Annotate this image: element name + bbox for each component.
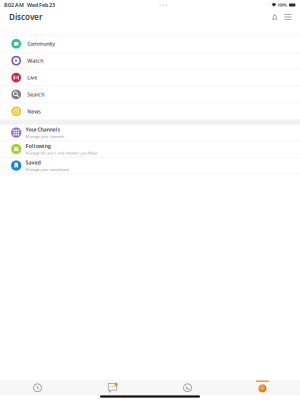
button[interactable]: Menu <box>281 11 295 23</box>
button[interactable]: Live <box>0 69 300 86</box>
staticText: Discover <box>9 12 42 22</box>
staticText: Search <box>27 91 44 98</box>
staticText: Following <box>25 142 50 150</box>
button[interactable]: Watch <box>0 52 300 69</box>
button[interactable]: Recent <box>0 380 75 395</box>
button[interactable]: News <box>0 103 300 120</box>
button[interactable]: Profile <box>225 380 300 395</box>
button[interactable]: Search <box>0 86 300 103</box>
staticText: Your Channels <box>25 126 60 133</box>
button[interactable]: Your Channels <box>0 125 300 141</box>
staticText: Manage the users and channels you follow <box>25 150 97 156</box>
staticText: Community <box>27 40 55 47</box>
button[interactable]: Calls <box>150 380 225 395</box>
button[interactable]: Community <box>0 36 300 52</box>
button[interactable]: Saved <box>0 158 300 174</box>
button[interactable]: Messages <box>75 380 150 395</box>
staticText: 8:02 AM Wed Feb 23 <box>4 1 55 9</box>
staticText: 100% <box>278 2 288 8</box>
staticText: Watch <box>27 57 43 64</box>
staticText: News <box>27 108 41 115</box>
staticText: Live <box>27 74 37 81</box>
button[interactable]: Notifications <box>269 10 281 23</box>
staticText: Manage your saved posts <box>25 167 69 172</box>
button[interactable]: Following <box>0 141 300 158</box>
staticText: Saved <box>25 159 40 166</box>
staticText: Manage your channels <box>25 134 64 139</box>
